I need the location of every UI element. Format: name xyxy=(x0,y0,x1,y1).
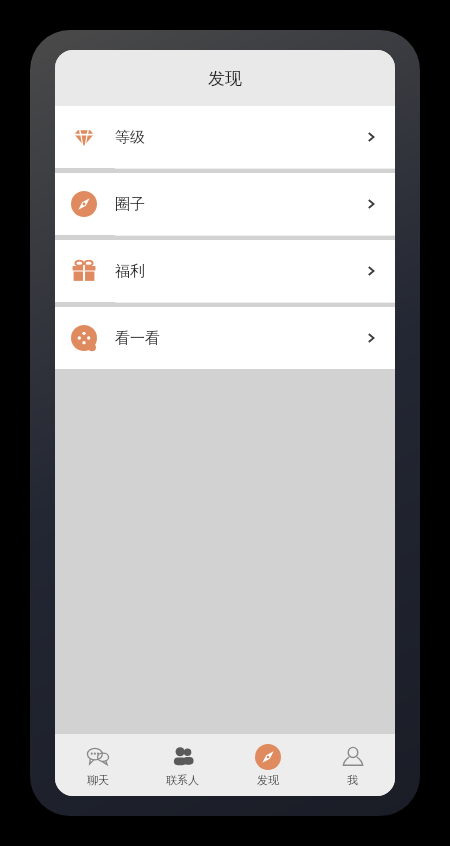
staticText: 看一看 xyxy=(115,329,363,348)
staticText: 我 xyxy=(347,773,358,787)
button[interactable]: 圈子 xyxy=(55,173,395,235)
button[interactable]: 聊天 xyxy=(55,738,140,793)
button[interactable]: 看一看 xyxy=(55,307,395,369)
button[interactable]: 我 xyxy=(310,738,395,793)
button[interactable]: 等级 xyxy=(55,106,395,168)
other: 发现 xyxy=(255,744,281,770)
button[interactable]: 发现 xyxy=(225,738,310,793)
staticText: 联系人 xyxy=(166,773,199,787)
staticText: 发现 xyxy=(257,773,279,787)
staticText: 发现 xyxy=(208,68,242,89)
staticText: 圈子 xyxy=(115,195,363,214)
button[interactable]: 联系人 xyxy=(140,738,225,793)
staticText: 聊天 xyxy=(87,773,109,787)
button[interactable]: 福利 xyxy=(55,240,395,302)
staticText: 等级 xyxy=(115,128,363,147)
staticText: 福利 xyxy=(115,262,363,281)
